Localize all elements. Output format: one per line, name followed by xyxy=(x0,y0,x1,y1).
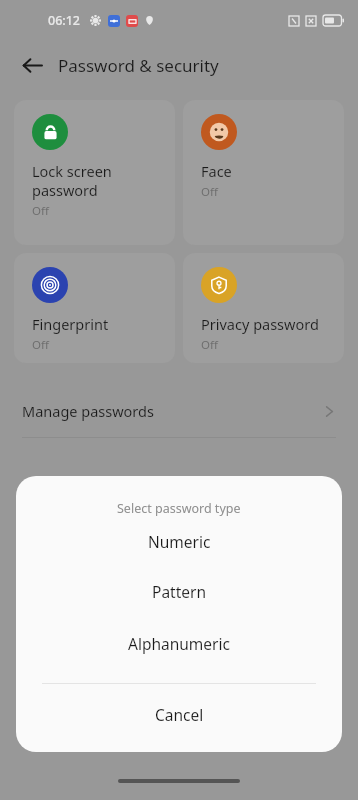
button[interactable]: Pattern xyxy=(16,565,342,617)
button[interactable]: Numeric xyxy=(16,517,342,565)
staticText: Off xyxy=(201,337,218,353)
staticText: Fingerprint xyxy=(32,314,109,334)
staticText: Privacy password xyxy=(201,314,319,334)
button[interactable]: Back xyxy=(12,45,52,85)
staticText: Pattern xyxy=(152,581,206,602)
staticText: Off xyxy=(32,337,49,353)
staticText: Face xyxy=(201,161,232,181)
button[interactable]: Lock screen password xyxy=(14,100,175,245)
staticText: Select password type xyxy=(117,500,241,517)
button[interactable]: Fingerprint xyxy=(14,253,175,363)
staticText: Numeric xyxy=(148,531,211,552)
button[interactable]: Manage passwords xyxy=(0,385,358,437)
staticText: Off xyxy=(201,184,218,200)
staticText: Lock screen password xyxy=(32,161,112,200)
staticText: Manage passwords xyxy=(22,401,154,421)
staticText: Off xyxy=(32,203,49,219)
button[interactable]: Alphanumeric xyxy=(16,617,342,669)
button[interactable]: Cancel xyxy=(16,684,342,744)
staticText: Alphanumeric xyxy=(128,633,230,654)
staticText: 06:12 xyxy=(48,12,81,29)
staticText: Cancel xyxy=(155,704,204,725)
button[interactable]: Privacy password xyxy=(183,253,344,363)
staticText: Password & security xyxy=(58,54,219,77)
button[interactable]: Face xyxy=(183,100,344,245)
